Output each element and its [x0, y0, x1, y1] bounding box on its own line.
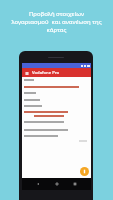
other: Menu: [25, 71, 29, 75]
staticText: Vodafone Pro: [32, 70, 60, 76]
button[interactable]: Recents: [73, 182, 77, 186]
staticText: Προβολή στοιχείων λογαριασμού και ανανέω…: [11, 10, 102, 34]
button[interactable]: Back: [36, 182, 40, 186]
button[interactable]: Menu: [22, 68, 91, 77]
button[interactable]: Refresh: [80, 167, 89, 176]
button[interactable]: Home: [55, 182, 59, 186]
